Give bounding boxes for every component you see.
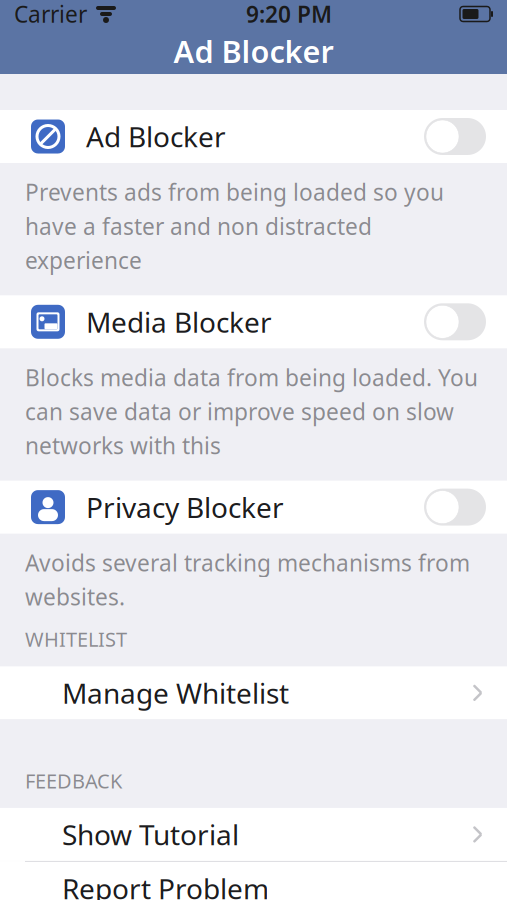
button[interactable]: Media Blocker: [0, 295, 507, 348]
staticText: Manage Whitelist: [62, 674, 289, 711]
staticText: Carrier: [14, 0, 87, 29]
staticText: Ad Blocker: [86, 118, 226, 155]
button[interactable]: Ad Blocker: [0, 110, 507, 163]
button[interactable]: Report Problem: [0, 862, 507, 900]
staticText: 9:20 PM: [246, 0, 332, 29]
staticText: Media Blocker: [86, 303, 272, 340]
staticText: Report Problem: [62, 870, 269, 900]
staticText: Ad Blocker: [173, 31, 333, 71]
staticText: Prevents ads from being loaded so you ha…: [25, 177, 444, 275]
staticText: WHITELIST: [25, 626, 127, 652]
button[interactable]: Manage Whitelist: [0, 666, 507, 719]
button[interactable]: Show Tutorial: [0, 808, 507, 861]
staticText: Blocks media data from being loaded. You…: [25, 362, 478, 461]
staticText: Avoids several tracking mechanisms from …: [25, 548, 470, 612]
staticText: Show Tutorial: [62, 816, 239, 853]
staticText: Privacy Blocker: [86, 488, 284, 526]
staticText: FEEDBACK: [25, 767, 122, 794]
button[interactable]: Privacy Blocker: [0, 481, 507, 534]
